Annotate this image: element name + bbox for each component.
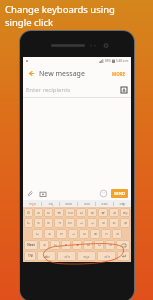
button[interactable]: ತ <box>72 240 82 250</box>
staticText: ಒ <box>36 232 39 236</box>
staticText: ಕ <box>65 243 67 247</box>
staticText: ಇ <box>58 221 61 225</box>
button[interactable]: ಅಂದ <box>96 200 113 207</box>
staticText: ಆ <box>47 211 50 215</box>
staticText: ಅಲ್ಲಿ <box>48 202 54 206</box>
button[interactable]: Next <box>24 240 38 250</box>
staticText: Next <box>27 243 35 247</box>
button[interactable]: ಇ <box>54 218 64 228</box>
button[interactable]: Backspace <box>116 240 130 250</box>
button[interactable]: Gallery <box>38 189 47 198</box>
staticText: ಒ <box>54 243 57 247</box>
button[interactable]: ಏ <box>34 218 43 228</box>
staticText: Change keyboards using <box>5 3 115 16</box>
button[interactable]: ಪ <box>68 229 78 239</box>
button[interactable]: ಟ <box>94 240 104 250</box>
staticText: !?# <box>28 254 33 258</box>
button[interactable]: ಉ <box>65 218 75 228</box>
button[interactable]: ಧ <box>109 208 119 217</box>
staticText: ಅ/ಆ <box>64 254 70 259</box>
staticText: ಪ <box>80 221 83 225</box>
button[interactable]: ಙ <box>87 208 97 217</box>
button[interactable]: ಈ <box>54 208 64 217</box>
button[interactable]: ಅ/ಆ <box>57 251 76 261</box>
button[interactable]: !?# <box>24 251 36 261</box>
staticText: ಔ <box>27 211 30 215</box>
button[interactable]: ಆ <box>44 208 53 217</box>
button[interactable]: ಪ <box>76 218 86 228</box>
button[interactable]: ಅಷ್ಟು <box>114 200 131 207</box>
staticText: ಭ <box>80 211 83 215</box>
button[interactable]: ಐ <box>34 208 43 217</box>
button[interactable]: ಊ <box>65 208 75 217</box>
button[interactable]: ಅದರ <box>60 200 77 207</box>
staticText: Enter recipients <box>26 86 71 94</box>
staticText: ಫ <box>91 221 94 225</box>
staticText: abc <box>44 254 50 259</box>
button[interactable]: Enter <box>117 251 130 261</box>
staticText: ಐ <box>37 211 40 215</box>
staticText: ಖ <box>112 221 116 225</box>
button[interactable]: ಭ <box>76 208 86 217</box>
staticText: ಅ <box>47 221 50 225</box>
button[interactable]: Back <box>26 68 37 79</box>
staticText: ಚ <box>87 243 90 247</box>
button[interactable]: SEND <box>111 189 128 198</box>
staticText: ಅದು <box>84 202 90 206</box>
staticText: 88% <box>105 59 111 63</box>
staticText: ಏ <box>37 221 40 225</box>
button[interactable]: ಕ <box>61 240 71 250</box>
staticText: ಘ <box>101 211 105 215</box>
button[interactable]: MORE <box>110 69 128 79</box>
staticText: ತ <box>76 243 79 247</box>
button[interactable]: ಓ <box>24 218 33 228</box>
staticText: ರ <box>109 243 112 247</box>
button[interactable]: ಗ <box>101 229 111 239</box>
button[interactable]: ಒ <box>32 229 43 239</box>
button[interactable]: ಕನ್ನಡ <box>23 200 41 207</box>
button[interactable]: ಣ <box>56 229 67 239</box>
button[interactable]: ರ <box>105 240 115 250</box>
staticText: ಅದರ <box>65 202 72 206</box>
staticText: ಜ <box>83 232 86 236</box>
button[interactable]: ಹ <box>90 229 100 239</box>
staticText: ಙ <box>91 211 94 215</box>
button[interactable]: Attach <box>26 189 35 198</box>
staticText: ಧ <box>113 211 116 215</box>
button[interactable]: ಜ <box>79 229 89 239</box>
staticText: ಓ <box>27 221 30 225</box>
button[interactable]: ಔ <box>24 208 33 217</box>
button[interactable]: ಕನ್ನಡ <box>77 251 96 261</box>
button[interactable]: ದ <box>112 229 122 239</box>
staticText: ಎ <box>43 243 46 247</box>
button[interactable]: ಖ <box>109 218 119 228</box>
button[interactable]: ಎ <box>39 240 49 250</box>
staticText: ಹ <box>94 232 97 236</box>
button[interactable]: ಅಲ್ಲಿ <box>42 200 59 207</box>
staticText: ಝ <box>123 211 128 215</box>
button[interactable]: ಎ <box>44 229 55 239</box>
button[interactable]: Emoji <box>99 189 108 198</box>
staticText: New message <box>39 69 85 79</box>
button[interactable]: ಚ <box>83 240 93 250</box>
button[interactable]: ಅದು <box>78 200 95 207</box>
staticText: ಈ <box>57 211 61 215</box>
staticText: single click <box>5 16 54 29</box>
button[interactable]: ಘ <box>98 208 108 217</box>
button[interactable]: abc <box>37 251 56 261</box>
button[interactable]: ಒ <box>50 240 60 250</box>
staticText: ಅ/ಆ <box>104 254 110 259</box>
button[interactable]: ಝ <box>120 208 130 217</box>
staticText: 5:48 a.m. <box>116 59 129 63</box>
button[interactable]: ಫ <box>87 218 97 228</box>
staticText: ಪ <box>72 232 75 236</box>
staticText: ಎ <box>48 232 51 236</box>
staticText: ಗ <box>105 232 108 236</box>
button[interactable]: ಅ/ಆ <box>97 251 116 261</box>
staticText: SEND <box>114 191 126 197</box>
button[interactable]: ಅ <box>44 218 53 228</box>
button[interactable]: ಥ <box>120 218 130 228</box>
staticText: ಣ <box>60 232 63 236</box>
button[interactable]: ಱ <box>98 218 108 228</box>
button[interactable]: Add contact <box>120 86 128 94</box>
